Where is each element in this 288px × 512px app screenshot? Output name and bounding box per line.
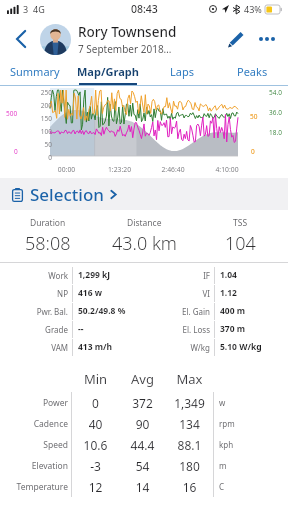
staticText: Elevation (0, 460, 68, 472)
staticText: 0 (251, 147, 255, 156)
staticText: Laps (170, 64, 194, 79)
staticText: 7 September 2018… (78, 42, 172, 56)
button[interactable]: Summary (0, 60, 70, 86)
staticText: Selection (30, 183, 104, 206)
staticText: 44.4 (119, 437, 166, 453)
staticText: VAM (0, 342, 68, 353)
staticText: 50 (250, 112, 258, 121)
staticText: 1.12 (220, 287, 288, 299)
staticText: Work (0, 270, 68, 281)
staticText: 36.0 (269, 108, 282, 117)
staticText: 58:08 (25, 231, 71, 256)
staticText: 100 (30, 127, 52, 136)
staticText: 180 (166, 458, 213, 474)
staticText: 413 m/h (78, 341, 154, 353)
staticText: 4G (33, 3, 45, 15)
staticText: TSS (233, 217, 248, 229)
staticText: 40 (72, 416, 119, 432)
staticText: 372 (119, 395, 166, 411)
staticText: 150 (30, 114, 52, 123)
staticText: 12 (72, 479, 119, 495)
staticText: Avg (119, 370, 166, 388)
staticText: 50.2/49.8 % (78, 305, 154, 317)
staticText: 1:23:20 (93, 165, 146, 174)
button[interactable]: Selection (0, 178, 288, 210)
staticText: 400 m (220, 305, 288, 317)
staticText: 0 (14, 147, 18, 156)
staticText: 500 (6, 109, 18, 118)
staticText: 16 (166, 479, 213, 495)
staticText: 50 (30, 140, 52, 149)
staticText: 4:10:00 (200, 165, 254, 174)
staticText: 104 (225, 231, 256, 256)
staticText: Power (0, 397, 68, 409)
staticText: 08:43 (131, 2, 158, 16)
staticText: 370 m (220, 323, 288, 335)
staticText: Distance (127, 217, 162, 229)
button[interactable]: Map/Graph (70, 60, 146, 86)
staticText: Summary (10, 64, 60, 79)
staticText: w (219, 397, 288, 408)
staticText: 1.04 (220, 269, 288, 281)
staticText: 14 (119, 479, 166, 495)
staticText: 3 (23, 3, 29, 15)
staticText: 200 (30, 101, 52, 110)
staticText: 1,299 kJ (78, 269, 154, 281)
staticText: 90 (119, 416, 166, 432)
staticText: 1,349 (166, 395, 213, 411)
staticText: 54.0 (269, 88, 282, 97)
staticText: Cadence (0, 418, 68, 430)
staticText: Max (166, 370, 213, 388)
staticText: NP (0, 288, 68, 299)
staticText: 134 (166, 416, 213, 432)
staticText: 18.0 (269, 128, 282, 137)
staticText: -- (78, 323, 154, 335)
staticText: rpm (219, 418, 288, 429)
staticText: VI (154, 288, 210, 299)
button[interactable]: Laps (146, 60, 217, 86)
staticText: 2:46:40 (146, 165, 200, 174)
staticText: 416 w (78, 287, 154, 299)
staticText: 10.6 (72, 437, 119, 453)
staticText: 250 (30, 88, 52, 97)
staticText: El. Loss (154, 324, 210, 335)
staticText: C (219, 481, 288, 492)
button[interactable]: Back (6, 24, 36, 54)
staticText: Pwr. Bal. (0, 306, 68, 317)
staticText: IF (154, 270, 210, 281)
button[interactable]: Edit (218, 22, 252, 56)
staticText: m (219, 460, 288, 471)
staticText: Grade (0, 324, 68, 335)
staticText: Peaks (237, 64, 268, 79)
staticText: 0 (72, 395, 119, 411)
staticText: kph (219, 439, 288, 450)
staticText: 54 (119, 458, 166, 474)
staticText: 43.0 km (112, 231, 177, 256)
staticText: 5.10 W/kg (220, 341, 288, 353)
staticText: 88.1 (166, 437, 213, 453)
staticText: Duration (30, 217, 66, 229)
staticText: Map/Graph (77, 64, 139, 79)
button[interactable]: Rory Townsend (78, 23, 218, 56)
staticText: -3 (72, 458, 119, 474)
button[interactable]: More options (252, 24, 282, 54)
staticText: Temperature (0, 481, 68, 493)
staticText: 00:00 (40, 165, 93, 174)
staticText: Speed (0, 439, 68, 451)
staticText: El. Gain (154, 306, 210, 317)
staticText: Rory Townsend (78, 23, 177, 41)
staticText: W/kg (154, 342, 210, 353)
staticText: 43% (244, 3, 262, 15)
button[interactable]: Peaks (217, 60, 288, 86)
staticText: Min (72, 370, 119, 388)
staticText: 0 (30, 153, 52, 162)
